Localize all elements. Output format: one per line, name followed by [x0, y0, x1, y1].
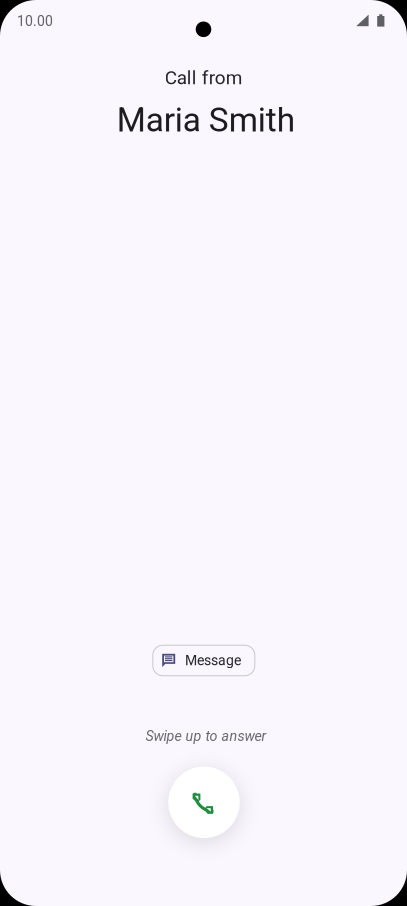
staticText: Call from — [165, 67, 243, 89]
staticText: Maria Smith — [117, 101, 295, 140]
button[interactable]: Answer call — [168, 767, 239, 838]
button[interactable]: Message — [153, 645, 255, 676]
staticText: Swipe up to answer — [145, 728, 266, 744]
staticText: 10.00 — [17, 13, 53, 29]
staticText: Message — [185, 652, 241, 669]
